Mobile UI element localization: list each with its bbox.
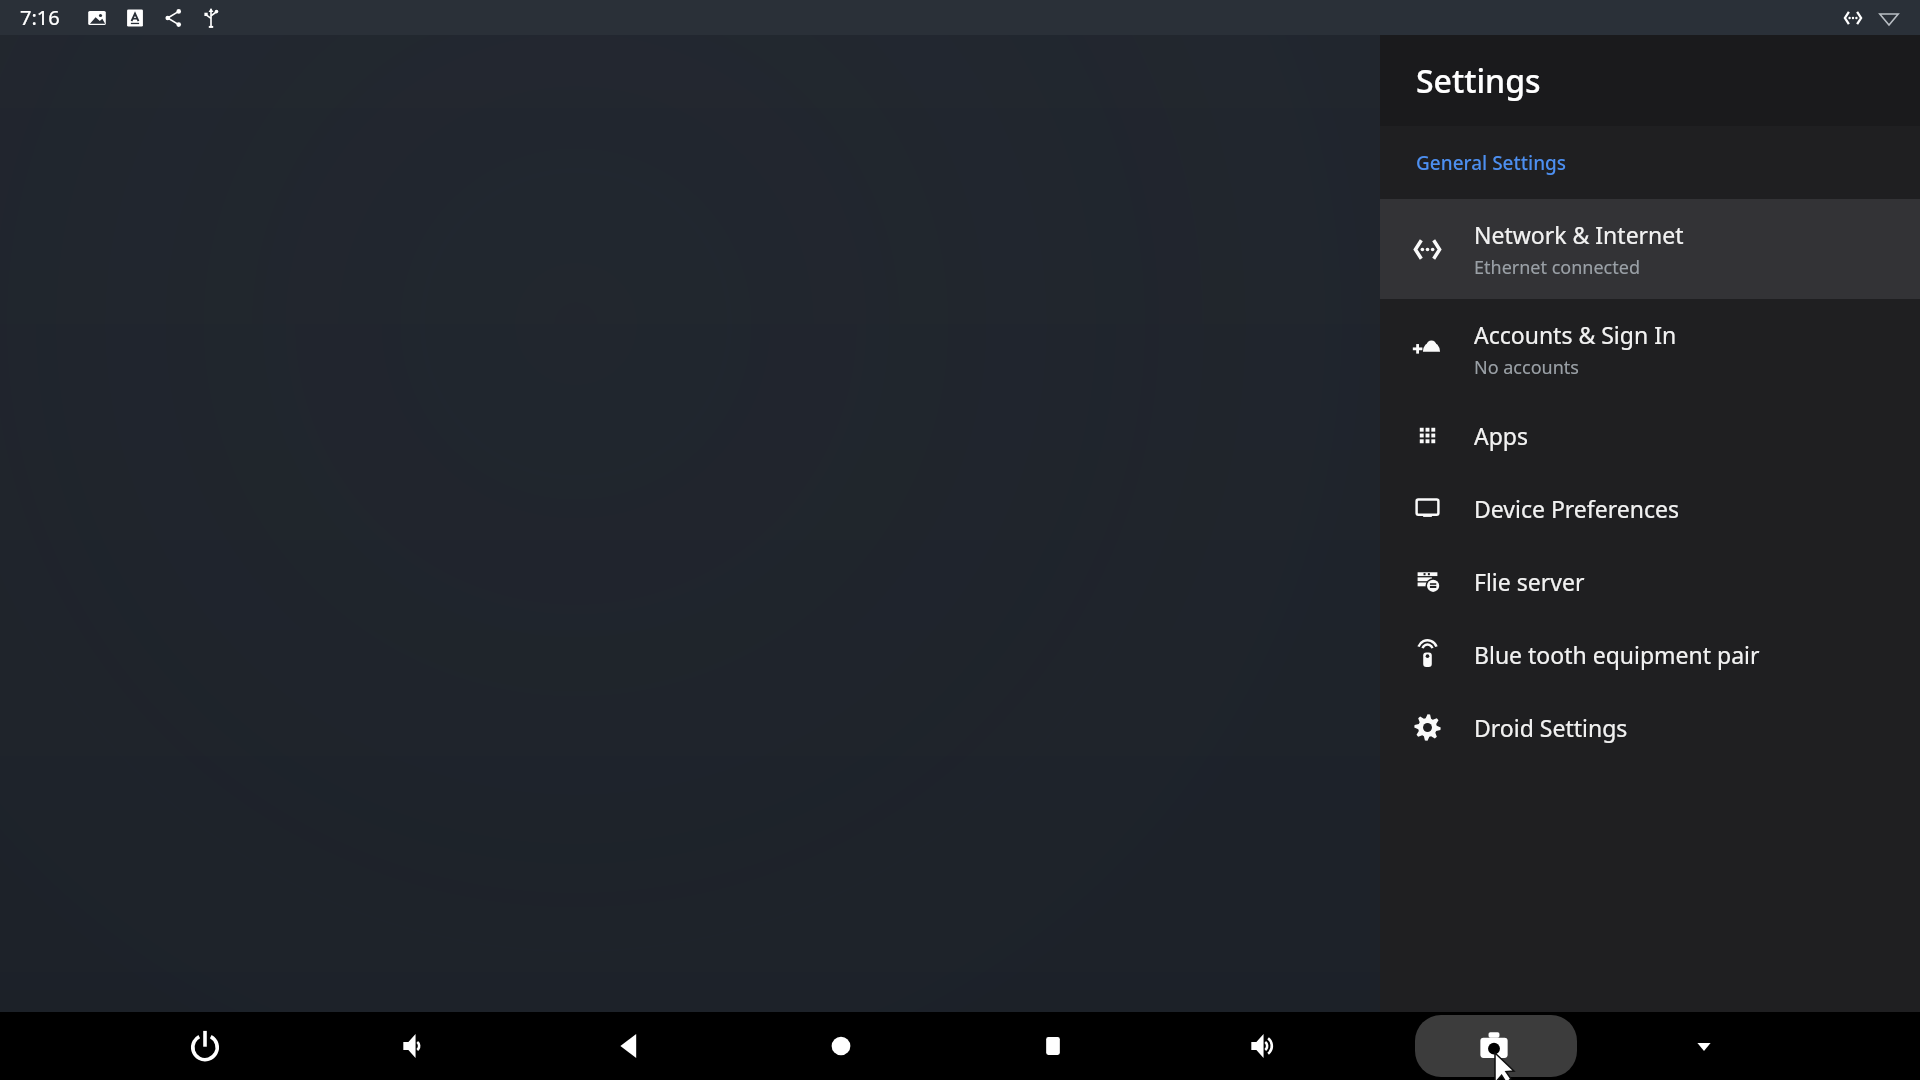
staticText: Network & Internet [1474, 219, 1684, 250]
staticText: Blue tooth equipment pair [1474, 639, 1760, 670]
button[interactable]: Network & Internet [1380, 199, 1920, 299]
button[interactable]: Back [564, 1012, 694, 1080]
button[interactable]: Flie server [1380, 545, 1920, 618]
staticText: Droid Settings [1474, 712, 1628, 743]
staticText: 7:16 [20, 4, 60, 31]
button[interactable]: Recents [988, 1012, 1118, 1080]
button[interactable]: Screenshot [1415, 1015, 1577, 1077]
staticText: Accounts & Sign In [1474, 319, 1677, 350]
staticText: Ethernet connected [1474, 255, 1640, 280]
staticText: General Settings [1416, 150, 1567, 176]
staticText: Device Preferences [1474, 493, 1679, 524]
button[interactable]: Volume down [352, 1012, 482, 1080]
button[interactable]: Volume up [1200, 1012, 1330, 1080]
button[interactable]: Accounts & Sign In [1380, 299, 1920, 399]
button[interactable]: Power [140, 1012, 270, 1080]
button[interactable]: Home [776, 1012, 906, 1080]
button[interactable]: Blue tooth equipment pair [1380, 618, 1920, 691]
staticText: No accounts [1474, 355, 1579, 380]
staticText: Settings [1416, 59, 1541, 103]
staticText: Apps [1474, 420, 1529, 451]
button[interactable]: Device Preferences [1380, 472, 1920, 545]
button[interactable]: Collapse [1682, 1024, 1726, 1068]
staticText: Flie server [1474, 566, 1585, 597]
button[interactable]: Apps [1380, 399, 1920, 472]
button[interactable]: Droid Settings [1380, 691, 1920, 764]
